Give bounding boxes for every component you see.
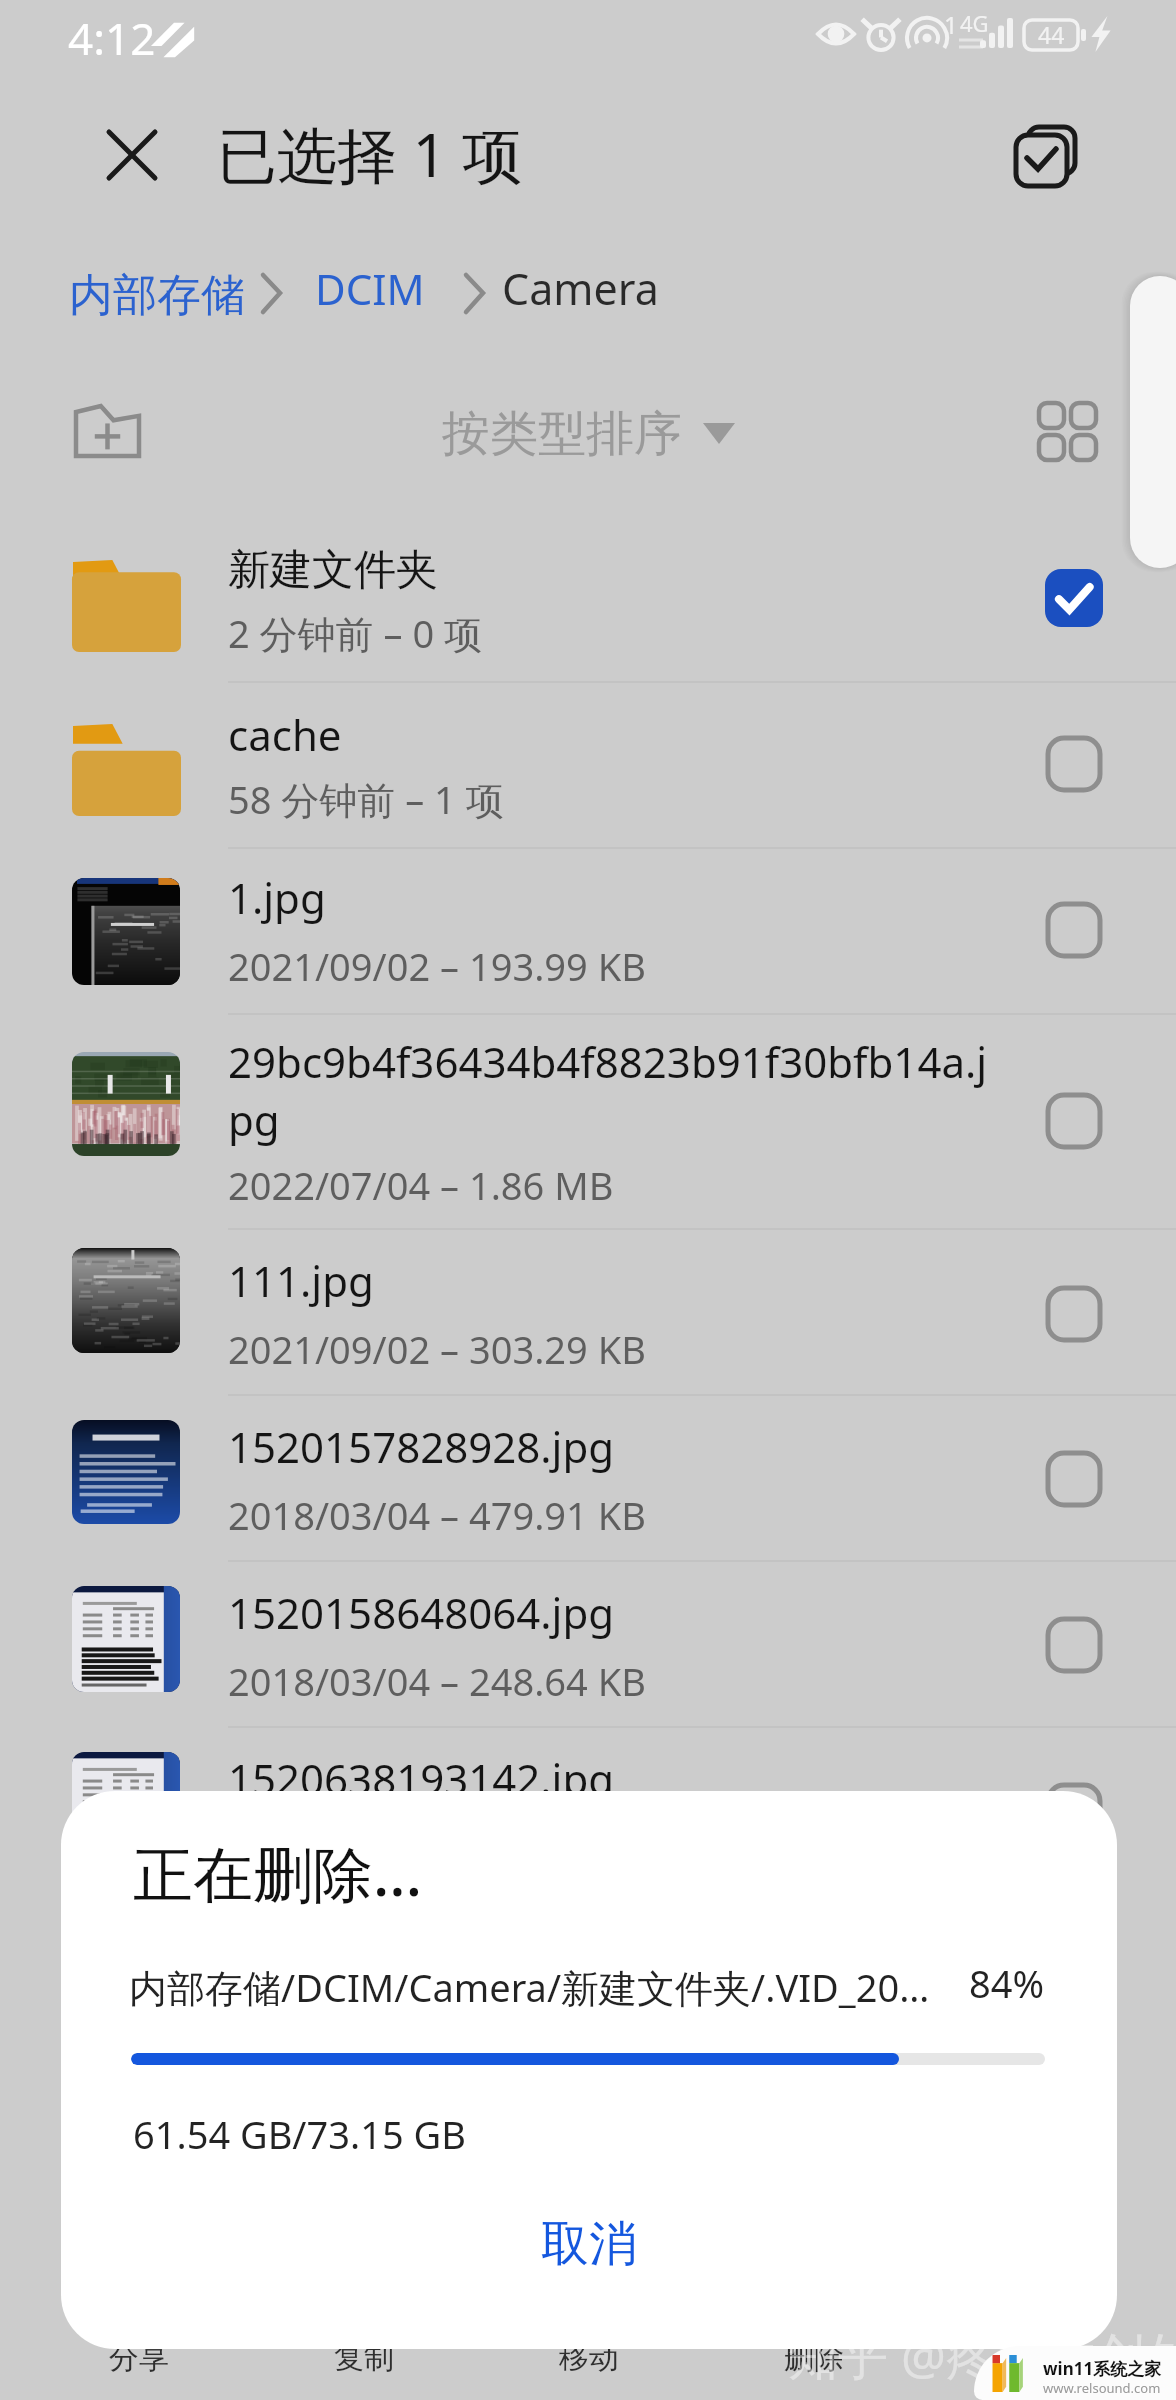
button[interactable] <box>0 681 1176 847</box>
button[interactable]: 内部存储 <box>69 268 245 323</box>
staticText: 分享 <box>109 2339 169 2377</box>
button[interactable]: Select item <box>1045 1092 1103 1150</box>
staticText: 1520157828928.jpg <box>228 1418 615 1475</box>
staticText: 取消 <box>541 2214 637 2274</box>
button[interactable]: New folder <box>55 385 161 479</box>
button[interactable]: 移动 <box>476 2330 701 2400</box>
staticText: 58 分钟前 – 1 项 <box>228 773 504 825</box>
button[interactable]: 取消 <box>61 2191 1117 2301</box>
staticText: 已选择 1 项 <box>217 113 523 195</box>
staticText: win11系统之家 <box>1043 2357 1162 2380</box>
staticText: 1520158648064.jpg <box>228 1584 615 1641</box>
staticText: 4G <box>960 8 989 38</box>
staticText: 2022/07/04 – 1.86 MB <box>228 1159 614 1211</box>
button[interactable]: 删除 <box>701 2330 926 2400</box>
button[interactable]: Select all <box>993 102 1101 210</box>
button[interactable] <box>0 847 1176 1013</box>
button[interactable]: 复制 <box>251 2330 476 2400</box>
staticText: 2021/09/02 – 193.99 KB <box>228 940 646 992</box>
button[interactable] <box>0 1560 1176 1726</box>
button[interactable]: Select item <box>1045 735 1103 793</box>
staticText: 正在删除... <box>133 1832 422 1914</box>
button[interactable]: Select item <box>1045 1285 1103 1343</box>
staticText: 内部存储/DCIM/Camera/新建文件夹/.VID_20… <box>129 1961 930 2013</box>
button[interactable]: 按类型排序 <box>442 404 735 462</box>
button[interactable]: Select item <box>1045 901 1103 959</box>
staticText: 删除 <box>784 2339 844 2377</box>
staticText: 知乎 @疼痛微创外科明日 <box>788 2321 1176 2389</box>
staticText: 新建文件夹 <box>228 544 438 597</box>
button[interactable] <box>0 1013 1176 1228</box>
staticText: 移动 <box>559 2339 619 2377</box>
button[interactable]: Grid view <box>1022 388 1114 476</box>
staticText: 1520638193142.jpg <box>228 1750 615 1807</box>
button[interactable]: DCIM <box>315 260 425 317</box>
staticText: 复制 <box>334 2339 394 2377</box>
button[interactable]: 分享 <box>26 2330 251 2400</box>
button[interactable] <box>0 1228 1176 1394</box>
button[interactable]: Close <box>84 107 180 203</box>
button[interactable] <box>0 500 1176 681</box>
staticText: 29bc9b4f36434b4f8823b91f30bfb14a.j pg <box>228 1033 988 1148</box>
staticText: 84% <box>969 1957 1045 2009</box>
button[interactable]: Select item <box>1045 1616 1103 1674</box>
staticText: www.relsound.com <box>1043 2379 1161 2397</box>
staticText: 61.54 GB/73.15 GB <box>133 2108 466 2160</box>
staticText: 1 <box>944 8 958 41</box>
staticText: 44 <box>1038 19 1065 50</box>
button[interactable] <box>0 1726 1176 1880</box>
staticText: 4:12 <box>68 8 156 68</box>
staticText: 2018/03/04 – 248.64 KB <box>228 1655 646 1707</box>
button[interactable] <box>0 1394 1176 1560</box>
button[interactable]: Select item <box>1045 1450 1103 1508</box>
staticText: cache <box>228 706 342 763</box>
staticText: 111.jpg <box>228 1252 374 1309</box>
staticText: 2018/03/04 – 479.91 KB <box>228 1489 646 1541</box>
button[interactable]: 更多 <box>926 2330 1151 2400</box>
staticText: Camera <box>502 259 659 318</box>
button[interactable]: Select item <box>1045 1782 1103 1840</box>
button[interactable]: Select item <box>1045 569 1103 627</box>
staticText: 2 分钟前 – 0 项 <box>228 607 482 659</box>
staticText: 2021/09/02 – 303.29 KB <box>228 1323 646 1375</box>
staticText: 1.jpg <box>228 869 326 926</box>
staticText: 更多 <box>1009 2339 1069 2377</box>
staticText: 按类型排序 <box>442 404 682 462</box>
